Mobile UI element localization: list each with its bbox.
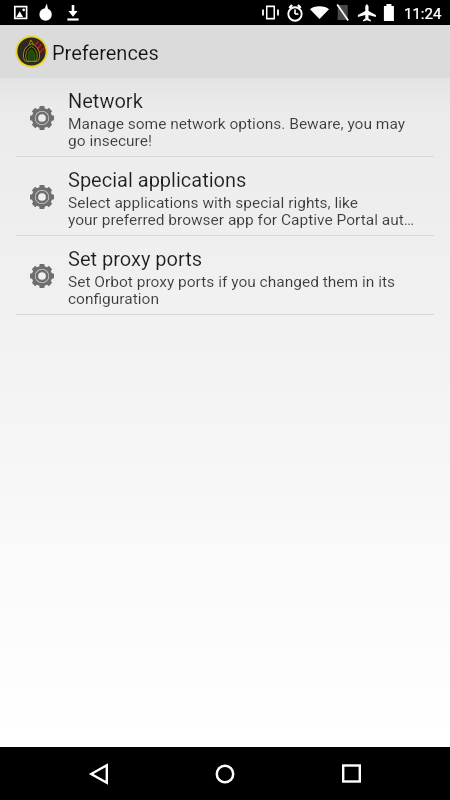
staticText: Manage some network options. Beware, you… <box>68 115 418 150</box>
staticText: 11:24 <box>404 5 442 23</box>
staticText: Special applications <box>68 168 247 191</box>
button[interactable]: Set proxy ports <box>0 236 450 314</box>
button[interactable]: Special applications <box>0 157 450 235</box>
staticText: Set proxy ports <box>68 247 203 270</box>
button[interactable]: Network <box>0 78 450 156</box>
staticText: Select applications with special rights,… <box>68 194 415 229</box>
staticText: Set Orbot proxy ports if you changed the… <box>68 273 418 308</box>
button[interactable]: Recents <box>324 747 378 800</box>
staticText: Preferences <box>52 41 159 64</box>
button[interactable]: Back <box>72 747 126 800</box>
staticText: Network <box>68 89 143 112</box>
button[interactable]: Home <box>198 747 252 800</box>
